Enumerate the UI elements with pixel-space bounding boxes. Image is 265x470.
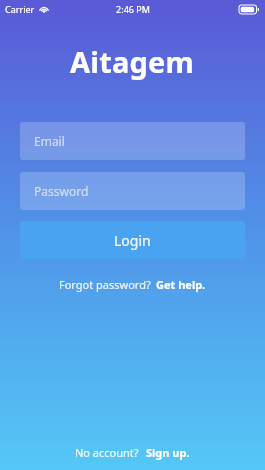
staticText: 2:46 PM [116, 3, 150, 15]
button[interactable]: Login [20, 221, 245, 259]
staticText: Login [114, 231, 151, 250]
staticText: Sign up. [146, 445, 190, 460]
button[interactable]: Forgot password? [53, 274, 212, 295]
staticText: Forgot password? [59, 277, 151, 292]
staticText: Get help. [156, 277, 206, 292]
staticText: Email [34, 133, 65, 149]
staticText: Password [34, 183, 89, 199]
staticText: Carrier [5, 3, 35, 15]
button[interactable]: Email [20, 122, 245, 160]
button[interactable]: No account? [67, 441, 198, 464]
staticText: Aitagem [70, 42, 195, 81]
staticText: No account? [75, 445, 139, 460]
button[interactable]: Password [20, 172, 245, 210]
